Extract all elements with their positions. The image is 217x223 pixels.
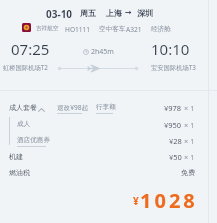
staticText: ¥978 [164,103,182,113]
staticText: 行李额 [96,103,116,111]
staticText: 吉祥航空 [36,25,59,32]
button[interactable]: 退改¥98起 [57,103,89,112]
staticText: 10:10 [151,39,190,59]
staticText: 宝安国际机场T3 [151,63,196,72]
staticText: ¥28 [169,136,182,146]
staticText: 机建 [9,152,23,161]
staticText: 酒店优惠券 [17,136,50,144]
staticText: ¥ [133,194,139,208]
staticText: 空中客车 [99,25,126,33]
staticText: 深圳 [137,8,153,18]
staticText: 虹桥国际机场T2 [3,63,48,72]
staticText: 2h45m [91,47,114,57]
staticText: 成人套餐 [9,103,37,112]
staticText: 03-10 [46,7,73,21]
staticText: 经济舱 [151,25,171,33]
staticText: 周五 [80,8,96,18]
button[interactable]: 行李额 [96,103,116,111]
staticText: HO1111 [65,25,91,34]
staticText: 上海 [106,8,122,18]
staticText: × 1 [184,136,195,146]
staticText: 07:25 [11,39,50,59]
staticText: × 1 [184,152,195,162]
staticText: A321 [126,25,142,34]
staticText: ¥50 [169,152,182,162]
staticText: → [125,8,132,17]
button[interactable]: 酒店优惠券 [17,136,50,144]
staticText: 燃油税 [9,168,30,177]
staticText: 退改¥98起 [57,103,89,112]
staticText: 免费 [181,168,195,177]
other: Collapse adult package [38,108,45,112]
staticText: ¥950 [164,120,182,130]
staticText: × 1 [184,103,195,113]
staticText: 1028 [140,187,198,214]
staticText: 成人 [17,120,31,128]
staticText: × 1 [184,120,195,130]
